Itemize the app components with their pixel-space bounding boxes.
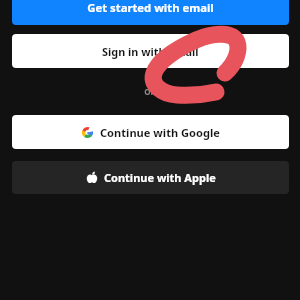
staticText: Get started with email — [87, 0, 214, 15]
staticText: Continue with Google — [100, 125, 220, 140]
staticText: Continue with Apple — [104, 170, 216, 185]
staticText: OR — [144, 86, 156, 97]
button[interactable]: Continue with Google — [12, 115, 289, 149]
staticText: Sign in with email — [102, 44, 199, 59]
button[interactable]: Continue with Apple — [12, 161, 289, 194]
button[interactable]: Get started with email — [12, 0, 289, 25]
other: Annotation — [0, 0, 300, 300]
button[interactable]: Sign in with email — [12, 34, 289, 68]
